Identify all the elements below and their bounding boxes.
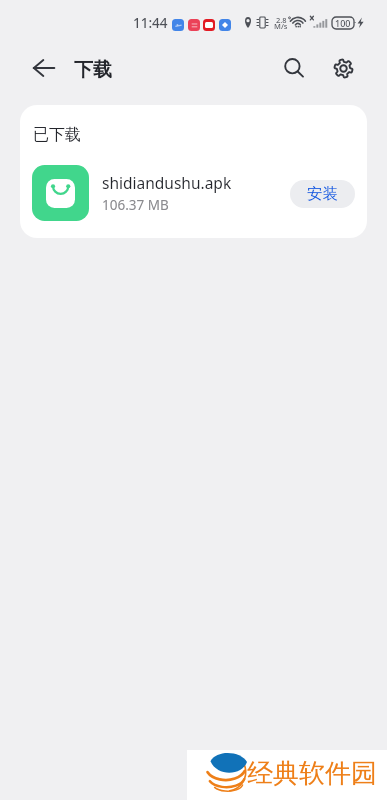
- button[interactable]: Back: [24, 52, 64, 84]
- staticText: 106.37 MB: [102, 196, 169, 214]
- staticText: 2.8: [276, 15, 287, 25]
- staticText: 经典软件园: [247, 757, 377, 790]
- staticText: 下载: [74, 58, 112, 82]
- button[interactable]: Search: [275, 52, 313, 84]
- staticText: 已下载: [33, 125, 81, 145]
- button[interactable]: Settings: [324, 52, 362, 84]
- staticText: shidiandushu.apk: [102, 172, 232, 193]
- staticText: 11:44: [133, 14, 168, 32]
- staticText: M/s: [274, 21, 288, 31]
- staticText: 100: [335, 17, 351, 29]
- staticText: 安装: [307, 184, 338, 204]
- button[interactable]: 安装: [290, 180, 355, 208]
